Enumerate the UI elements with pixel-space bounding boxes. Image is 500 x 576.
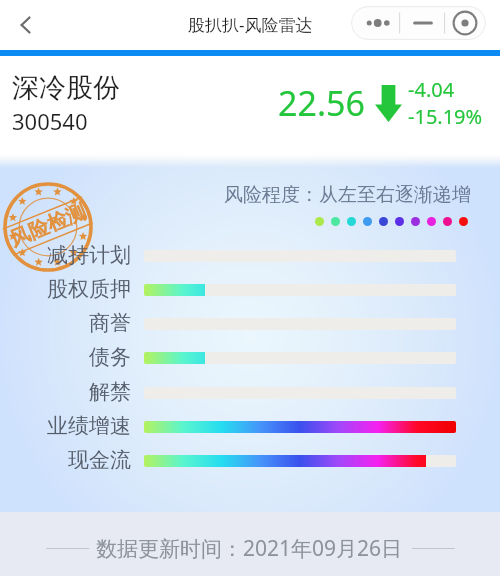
staticText: 债务 — [11, 344, 131, 370]
button[interactable]: Menu — [351, 6, 486, 40]
staticText: -4.04 — [408, 76, 455, 103]
button[interactable] — [144, 284, 456, 296]
staticText: 股权质押 — [11, 276, 131, 302]
staticText: 数据更新时间：2021年09月26日 — [96, 534, 403, 563]
staticText: 减持计划 — [11, 242, 131, 268]
staticText: 22.56 — [278, 80, 365, 126]
staticText: 股扒扒-风险雷达 — [188, 13, 313, 36]
staticText: 商誉 — [11, 310, 131, 336]
button[interactable] — [144, 421, 456, 433]
staticText: 深冷股份 — [12, 71, 120, 105]
staticText: 业绩增速 — [11, 413, 131, 439]
staticText: 300540 — [12, 106, 88, 136]
staticText: 风险程度：从左至右逐渐递增 — [224, 183, 471, 207]
staticText: -15.19% — [408, 103, 483, 130]
button[interactable] — [144, 455, 456, 467]
other: 风险检测 — [3, 182, 93, 272]
staticText: 解禁 — [11, 379, 131, 405]
staticText: 风险检测 — [6, 199, 90, 252]
button[interactable] — [144, 352, 456, 364]
button[interactable]: Back — [0, 0, 52, 50]
staticText: 现金流 — [11, 447, 131, 473]
